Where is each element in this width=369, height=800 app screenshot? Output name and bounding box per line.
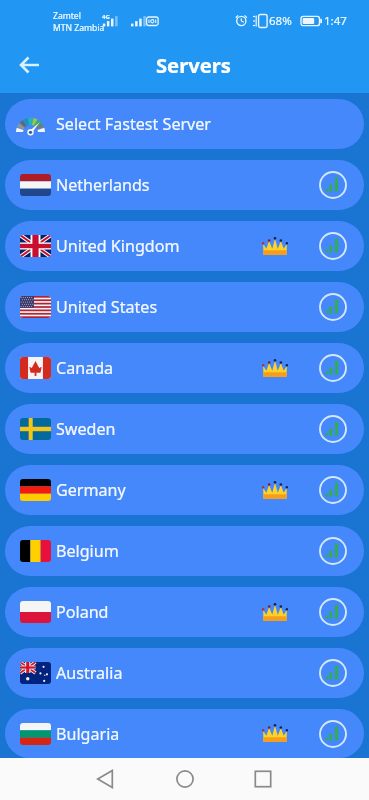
staticText: Australia (56, 662, 123, 684)
staticText: Zamtel (53, 10, 81, 22)
button[interactable]: United States (5, 282, 364, 332)
staticText: Poland (56, 601, 109, 623)
staticText: Belgium (56, 540, 119, 562)
button[interactable]: Recents (245, 761, 281, 797)
staticText: Bulgaria (56, 723, 120, 745)
button[interactable]: Back (14, 49, 46, 81)
staticText: 1:47 (324, 13, 347, 29)
staticText: United Kingdom (56, 235, 180, 257)
staticText: 68% (269, 13, 292, 29)
button[interactable]: Canada (5, 343, 364, 393)
button[interactable]: Germany (5, 465, 364, 515)
staticText: Servers (156, 51, 231, 79)
staticText: Select Fastest Server (56, 113, 211, 135)
staticText: MTN Zambia (53, 22, 105, 34)
button[interactable]: Select Fastest Server (5, 99, 364, 149)
button[interactable]: Bulgaria (5, 709, 364, 758)
button[interactable]: Australia (5, 648, 364, 698)
staticText: Canada (56, 357, 114, 379)
staticText: 4G (102, 13, 110, 21)
button[interactable]: Back (87, 761, 123, 797)
staticText: Netherlands (56, 174, 150, 196)
staticText: United States (56, 296, 158, 318)
button[interactable]: Sweden (5, 404, 364, 454)
button[interactable]: Netherlands (5, 160, 364, 210)
staticText: Sweden (56, 418, 116, 440)
button[interactable]: Belgium (5, 526, 364, 576)
button[interactable]: Home (167, 761, 203, 797)
button[interactable]: Poland (5, 587, 364, 637)
staticText: Germany (56, 479, 126, 501)
button[interactable]: United Kingdom (5, 221, 364, 271)
